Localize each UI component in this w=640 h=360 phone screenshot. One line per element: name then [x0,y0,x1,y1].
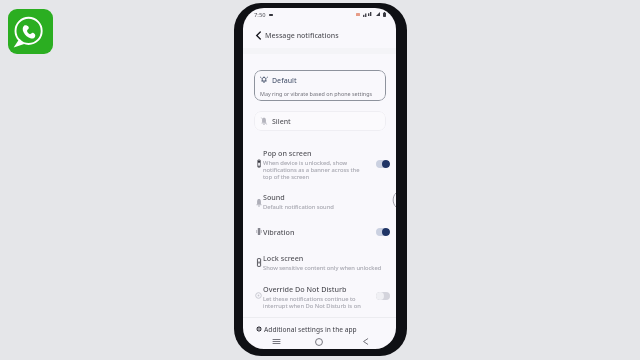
button[interactable]: WhatsApp [8,9,53,54]
staticText: Override Do Not Disturb [263,284,347,294]
staticText: Additional settings in the app [264,325,357,334]
button[interactable]: Override Do Not Disturb toggle [376,292,390,300]
button[interactable]: Pop on screen toggle [376,160,390,168]
staticText: When device is unlocked, show [263,159,348,167]
staticText: Let these notifications continue to [263,295,356,303]
button[interactable] [243,252,396,273]
staticText: top of the screen [263,173,310,181]
staticText: Pop on screen [263,148,312,158]
button[interactable]: Vibration toggle [376,228,390,236]
staticText: notifications as a banner across the [263,166,360,174]
staticText: 7:50 [254,11,266,19]
staticText: Lock screen [263,253,304,263]
staticText: Message notifications [265,30,339,40]
button[interactable]: Back [251,28,265,42]
button[interactable]: Home [312,335,325,348]
staticText: interrupt when Do Not Disturb is on [263,302,361,310]
staticText: Silent [272,117,291,127]
staticText: Sound [263,192,285,202]
staticText: Default notification sound [263,203,334,211]
staticText: Default [272,76,297,86]
button[interactable]: Default [254,70,386,101]
button[interactable] [243,283,396,311]
button[interactable]: Recents [270,335,283,348]
button[interactable]: Additional settings in the app [243,323,396,337]
button[interactable] [243,226,396,238]
staticText: May ring or vibrate based on phone setti… [260,90,373,97]
button[interactable] [243,191,396,212]
button[interactable]: Back [359,335,372,348]
button[interactable] [243,147,396,182]
button[interactable]: Silent [254,111,386,131]
staticText: Vibration [263,227,295,237]
staticText: Show sensitive content only when unlocke… [263,264,382,272]
